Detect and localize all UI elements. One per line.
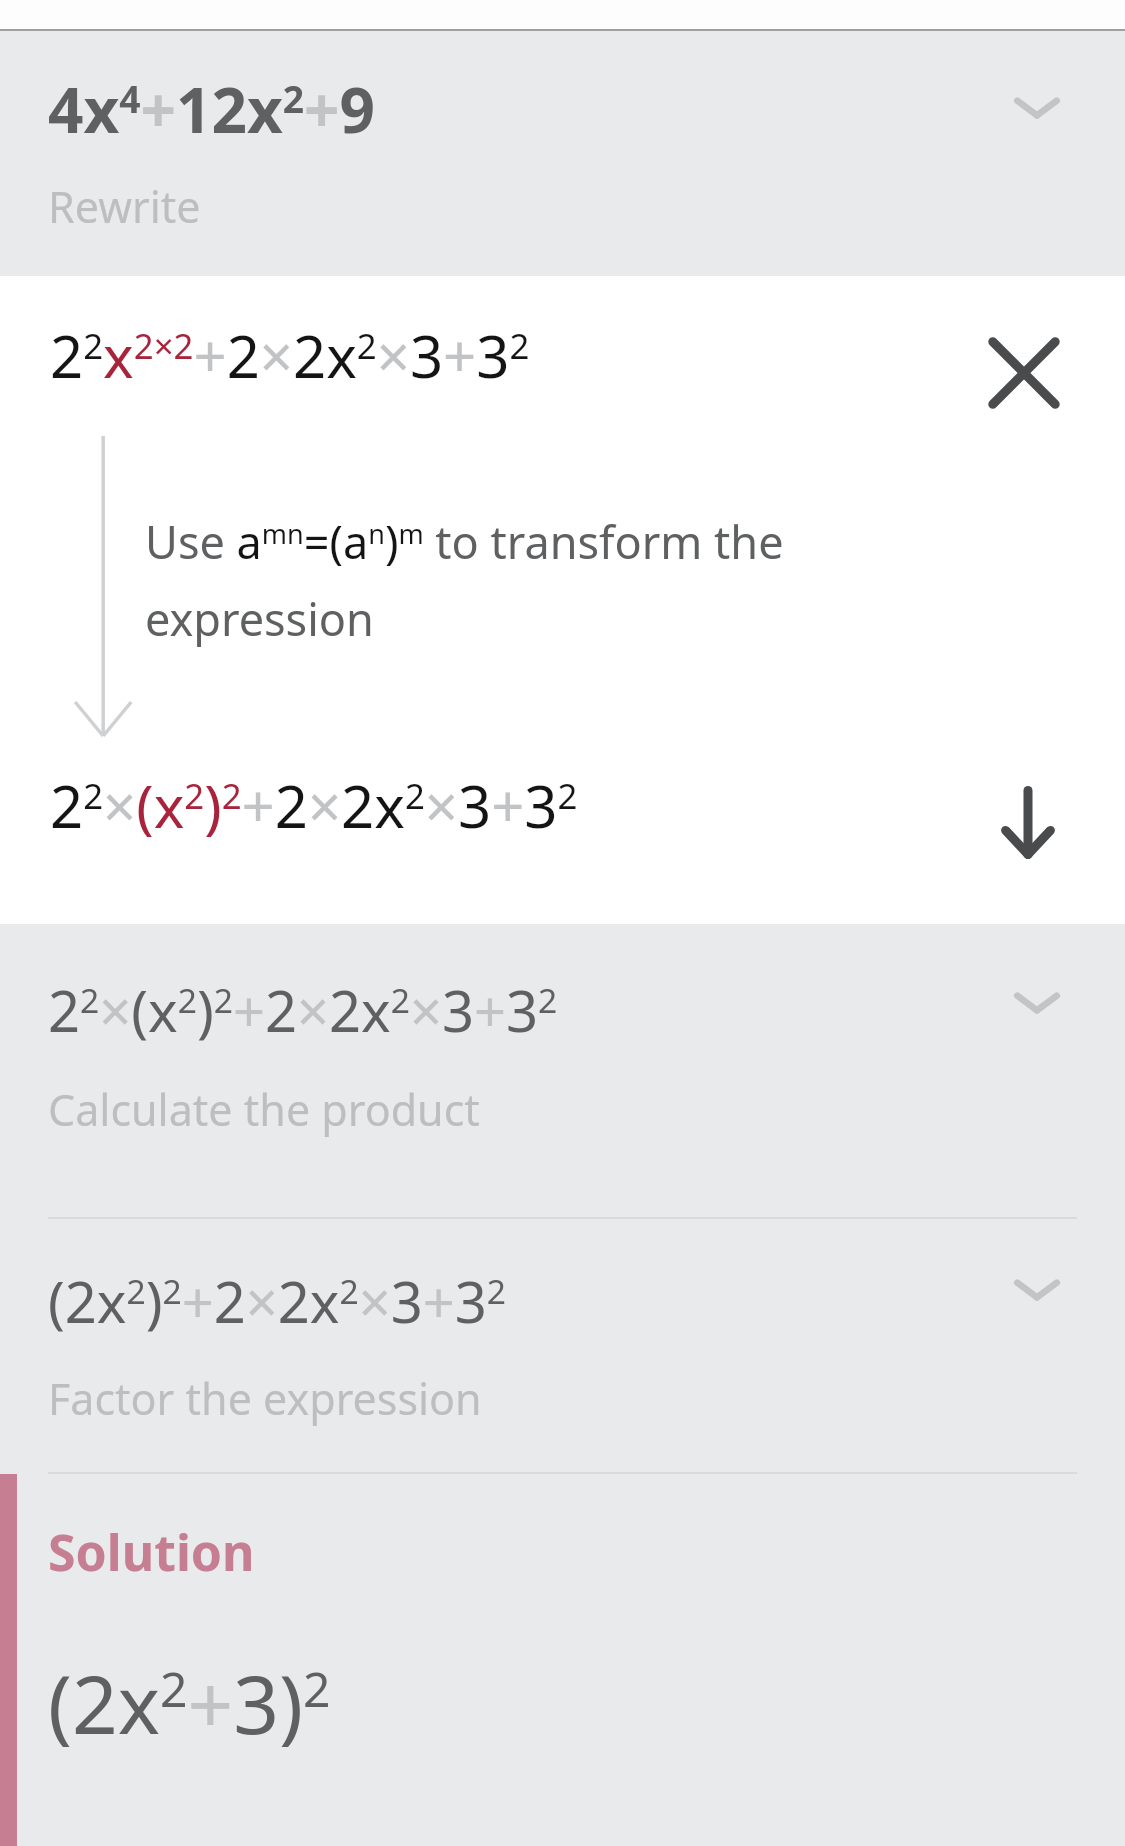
staticText: 22×(x2)2+2×2x2×3+32 xyxy=(50,766,578,845)
staticText: Solution xyxy=(48,1518,255,1586)
staticText: 22×(x2)2+2×2x2×3+32 xyxy=(48,972,558,1048)
staticText: Factor the expression xyxy=(48,1369,482,1428)
button[interactable]: 22×(x2)2+2×2x2×3+32 xyxy=(0,924,1125,1217)
button[interactable]: 4x4+12x2+9 xyxy=(0,31,1125,276)
button[interactable]: (2x2)2+2×2x2×3+32 xyxy=(0,1219,1125,1472)
button[interactable]: Solution xyxy=(17,1474,1125,1846)
staticText: 4x4+12x2+9 xyxy=(48,67,375,151)
staticText: Use amn=(an)m to transform the xyxy=(145,511,784,572)
staticText: 22x2×2+2×2x2×3+32 xyxy=(50,316,530,395)
staticText: (2x2+3)2 xyxy=(48,1648,331,1757)
staticText: (2x2)2+2×2x2×3+32 xyxy=(48,1263,506,1339)
staticText: Rewrite xyxy=(48,177,201,236)
button[interactable]: Next step xyxy=(988,784,1068,864)
staticText: Calculate the product xyxy=(48,1080,480,1139)
staticText: expression xyxy=(145,588,374,649)
button[interactable]: Close step xyxy=(985,334,1063,412)
